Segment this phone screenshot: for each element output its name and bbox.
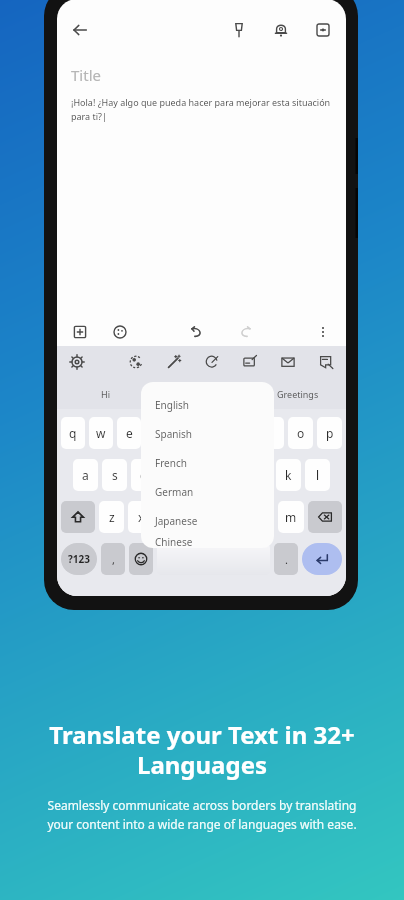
staticText: d bbox=[140, 467, 148, 483]
button[interactable]: Add bbox=[67, 319, 93, 345]
button[interactable]: Archive bbox=[310, 17, 336, 43]
button[interactable]: d bbox=[131, 459, 156, 491]
staticText: m bbox=[285, 509, 297, 525]
button[interactable]: Hello bbox=[154, 378, 250, 409]
button[interactable]: Compose card bbox=[238, 350, 262, 374]
staticText: a bbox=[82, 467, 89, 483]
staticText: p bbox=[326, 425, 334, 441]
button[interactable]: More options bbox=[310, 319, 336, 345]
button[interactable]: Japanese bbox=[155, 506, 274, 535]
button[interactable]: Shift bbox=[61, 501, 95, 533]
button[interactable] bbox=[157, 543, 270, 575]
button[interactable]: l bbox=[305, 459, 330, 491]
staticText: q bbox=[69, 425, 77, 441]
button[interactable]: t bbox=[173, 417, 197, 449]
staticText: Hi bbox=[101, 388, 110, 400]
staticText: Greetings bbox=[277, 388, 319, 400]
button[interactable]: . bbox=[274, 543, 298, 575]
staticText: ¡Hola! ¿Hay algo que pueda hacer para me… bbox=[71, 96, 332, 123]
button[interactable]: Reminder bbox=[268, 17, 294, 43]
staticText: Seamlessly communicate across borders by… bbox=[34, 797, 370, 832]
staticText: Title bbox=[71, 65, 101, 85]
button[interactable]: , bbox=[101, 543, 125, 575]
button[interactable]: e bbox=[117, 417, 141, 449]
button[interactable]: Chinese bbox=[155, 535, 274, 548]
staticText: Chinese bbox=[155, 535, 193, 548]
button[interactable]: a bbox=[73, 459, 98, 491]
staticText: l bbox=[316, 467, 320, 483]
button[interactable]: Color palette bbox=[107, 319, 133, 345]
button[interactable]: Enter bbox=[302, 543, 342, 575]
staticText: Spanish bbox=[155, 427, 192, 441]
button[interactable]: r bbox=[145, 417, 169, 449]
staticText: English bbox=[155, 398, 190, 412]
button[interactable]: English bbox=[155, 390, 274, 419]
staticText: o bbox=[297, 425, 305, 441]
button[interactable]: s bbox=[102, 459, 127, 491]
button[interactable]: p bbox=[317, 417, 342, 449]
staticText: c bbox=[168, 509, 174, 525]
staticText: w bbox=[96, 425, 106, 441]
button[interactable]: Translate bbox=[124, 350, 148, 374]
button[interactable]: x bbox=[128, 501, 154, 533]
staticText: z bbox=[109, 509, 115, 525]
button[interactable]: AI rewrite bbox=[162, 350, 186, 374]
button[interactable]: Greetings bbox=[250, 378, 346, 409]
staticText: e bbox=[126, 425, 133, 441]
button[interactable]: Pin bbox=[226, 17, 252, 43]
button[interactable]: w bbox=[89, 417, 113, 449]
button[interactable]: k bbox=[276, 459, 301, 491]
button[interactable]: French bbox=[155, 448, 274, 477]
button[interactable]: Email bbox=[276, 350, 300, 374]
button[interactable]: Emoji bbox=[129, 543, 153, 575]
button[interactable]: v bbox=[188, 501, 214, 533]
staticText: French bbox=[155, 456, 187, 470]
staticText: German bbox=[155, 485, 194, 499]
button[interactable]: Keyboard settings bbox=[65, 350, 89, 374]
button[interactable]: m bbox=[278, 501, 304, 533]
button[interactable]: Edit bbox=[200, 350, 224, 374]
staticText: k bbox=[285, 467, 292, 483]
button[interactable]: Undo bbox=[183, 319, 209, 345]
button[interactable]: Spanish bbox=[155, 419, 274, 448]
staticText: Japanese bbox=[155, 514, 198, 528]
button[interactable]: g bbox=[189, 459, 214, 491]
button[interactable]: Notes bbox=[314, 350, 338, 374]
staticText: . bbox=[285, 552, 288, 567]
staticText: , bbox=[112, 552, 115, 567]
staticText: ?123 bbox=[68, 552, 90, 566]
button[interactable]: Back bbox=[67, 17, 93, 43]
button[interactable]: o bbox=[288, 417, 313, 449]
staticText: s bbox=[112, 467, 118, 483]
staticText: r bbox=[155, 425, 160, 441]
button[interactable]: ?123 bbox=[61, 543, 97, 575]
button[interactable]: q bbox=[61, 417, 85, 449]
button[interactable]: Redo bbox=[233, 319, 259, 345]
button[interactable]: Hi bbox=[57, 378, 154, 409]
button[interactable]: German bbox=[155, 477, 274, 506]
staticText: t bbox=[183, 425, 188, 441]
button[interactable]: z bbox=[99, 501, 124, 533]
button[interactable]: c bbox=[158, 501, 184, 533]
button[interactable]: f bbox=[160, 459, 185, 491]
staticText: x bbox=[138, 509, 145, 525]
button[interactable]: Backspace bbox=[308, 501, 342, 533]
